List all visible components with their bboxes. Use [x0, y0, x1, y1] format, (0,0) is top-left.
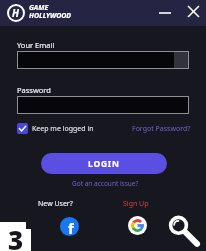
button[interactable] [17, 96, 189, 114]
staticText: Password [17, 85, 51, 95]
staticText: f [68, 218, 74, 236]
staticText: New User? [38, 199, 73, 209]
button[interactable] [158, 0, 174, 16]
staticText: 3 [8, 222, 24, 251]
button[interactable]: Sign Up [0, 0, 26, 10]
button[interactable] [17, 51, 189, 69]
staticText: Keep me logged in [32, 124, 94, 134]
button[interactable]: Forgot Password? [0, 0, 59, 10]
button[interactable]: Got an account issue? [0, 0, 67, 9]
staticText: H [12, 6, 20, 20]
staticText: Your Email [17, 40, 55, 50]
button[interactable] [186, 4, 201, 19]
staticText: LOGIN [88, 158, 120, 170]
button[interactable]: LOGIN [41, 153, 167, 174]
button[interactable] [17, 123, 28, 134]
staticText: GAME [29, 3, 49, 13]
button[interactable] [128, 216, 147, 235]
button[interactable]: f [60, 217, 79, 236]
staticText: HOLLYWOOD [29, 11, 72, 21]
